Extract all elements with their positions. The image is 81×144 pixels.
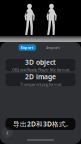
- button[interactable]: 2D image: [5, 73, 75, 86]
- staticText: 2D image: [25, 72, 56, 81]
- staticText: Import: [46, 45, 60, 50]
- staticText: 3D object: [25, 58, 56, 67]
- staticText: Transparent png format: [20, 81, 61, 87]
- button[interactable]: 3D object: [5, 59, 75, 71]
- button[interactable]: Export: [19, 44, 36, 51]
- button[interactable]: Back: [2, 127, 13, 138]
- staticText: 导出2D和3D格式.: [13, 120, 68, 128]
- staticText: OBJ and Ready Player Me format: [12, 67, 69, 72]
- button[interactable]: Import: [44, 44, 62, 51]
- staticText: Export: [21, 45, 34, 50]
- button[interactable]: 导出2D和3D格式.: [5, 118, 75, 130]
- staticText: ‹: [6, 127, 9, 138]
